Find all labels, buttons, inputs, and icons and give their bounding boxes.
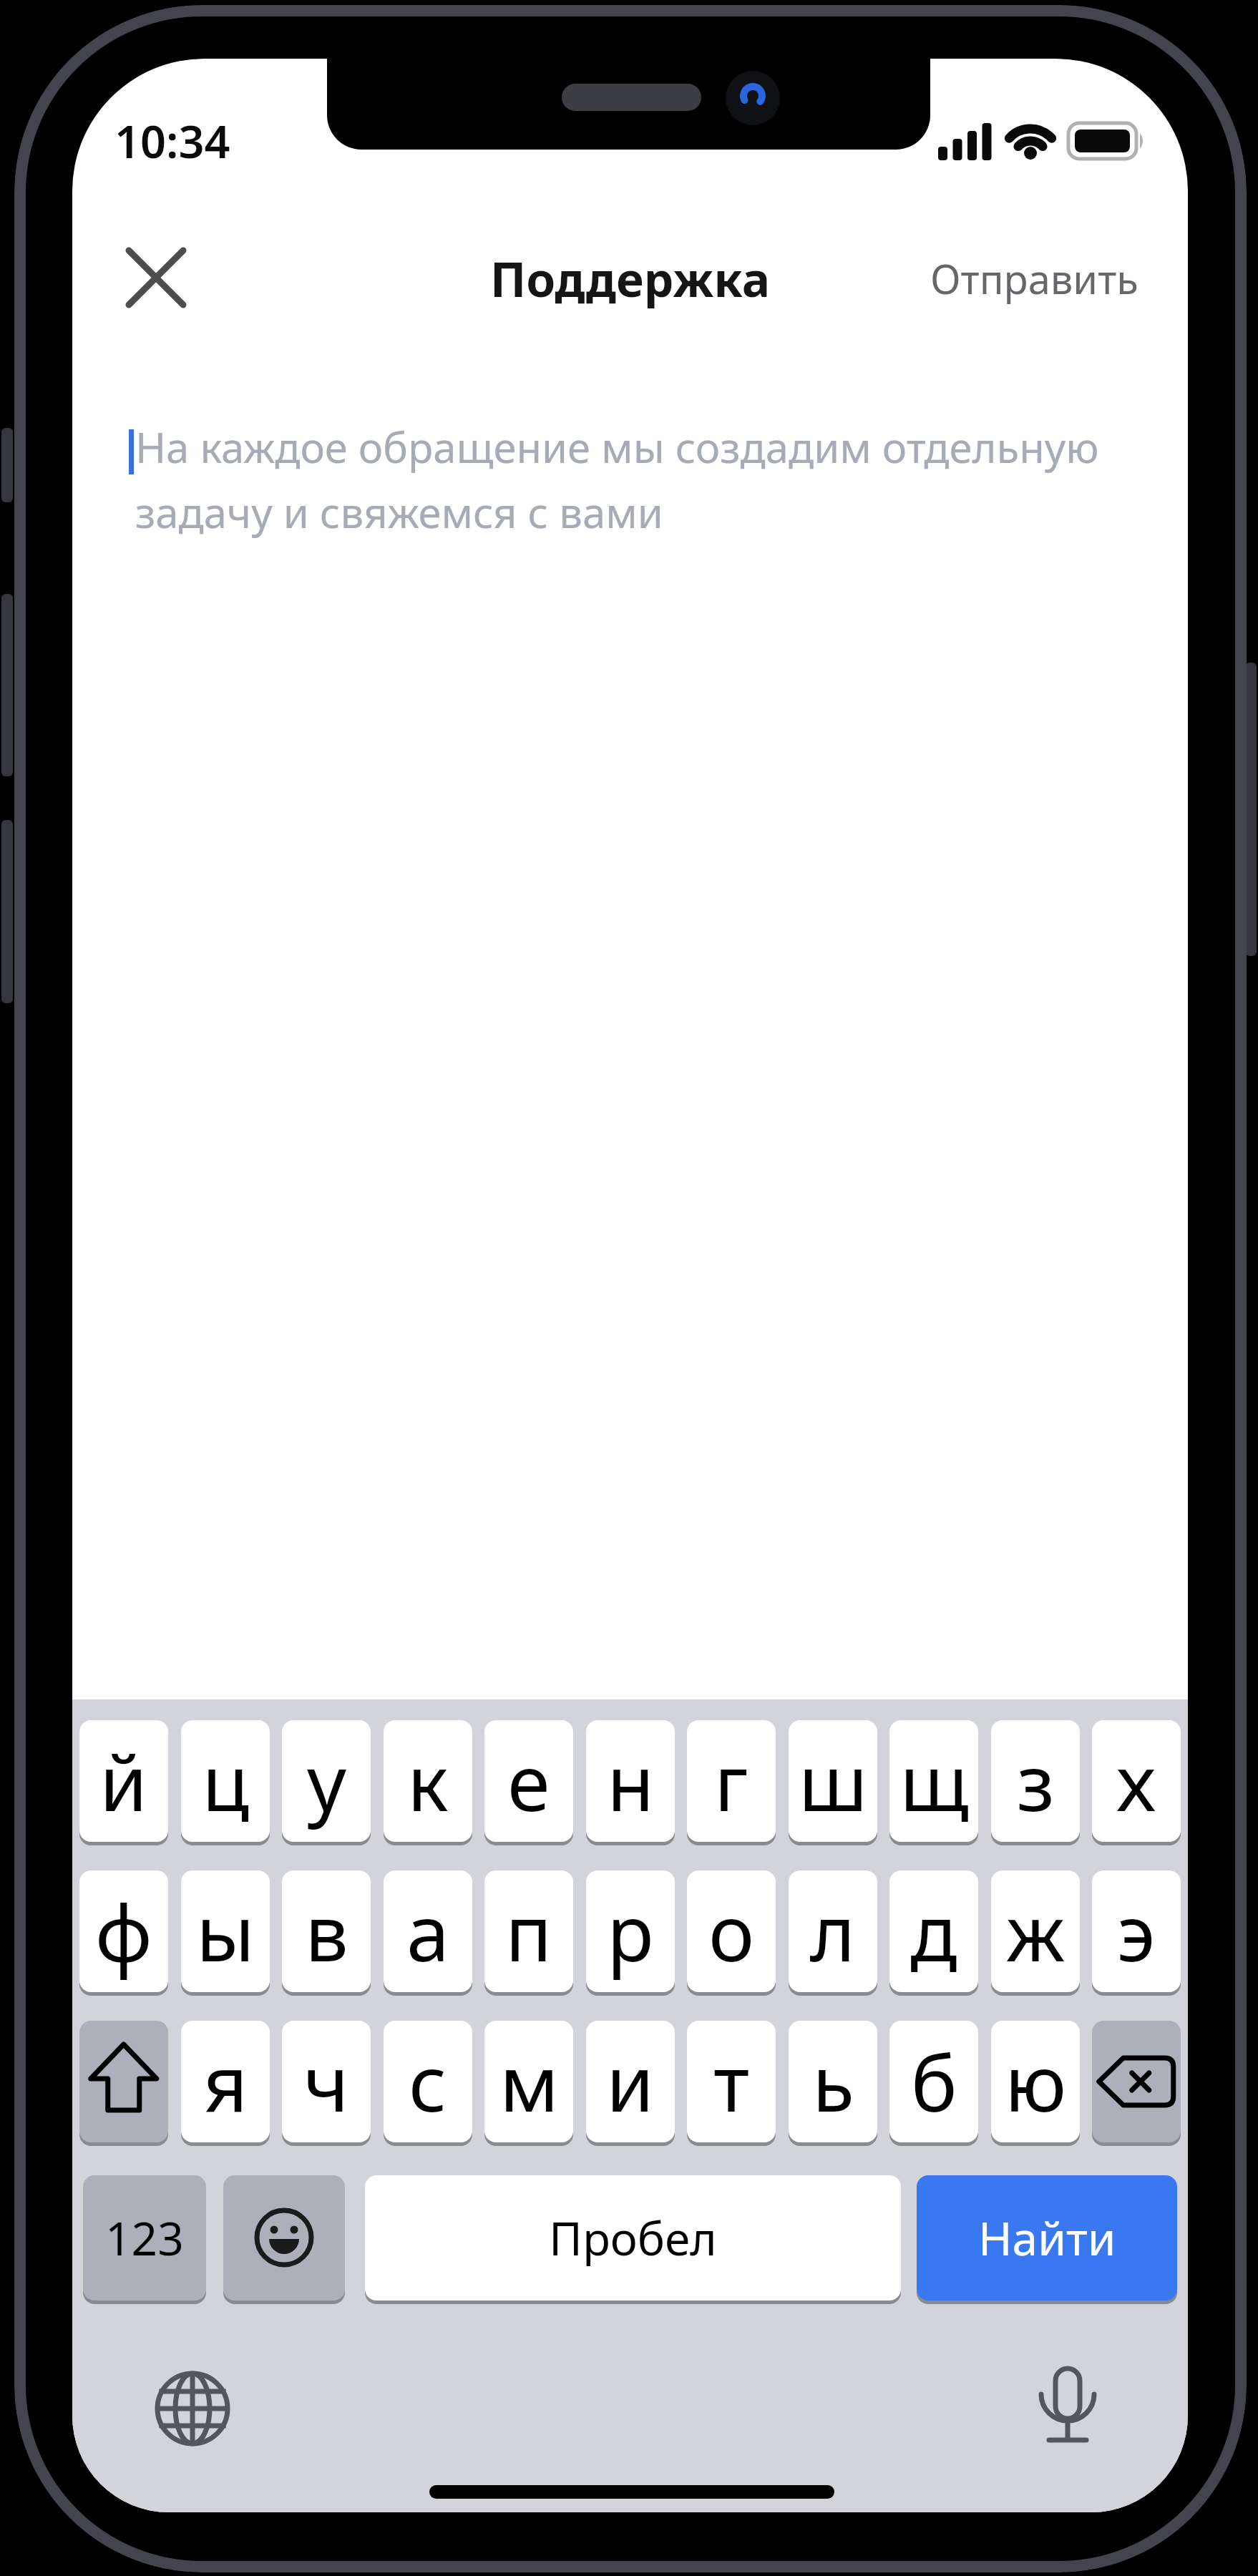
staticText: ю bbox=[1005, 2029, 1067, 2135]
staticText: т bbox=[713, 2029, 750, 2135]
button[interactable]: о bbox=[687, 1870, 776, 1992]
staticText: 10:34 bbox=[114, 110, 230, 170]
button[interactable]: д bbox=[889, 1870, 978, 1992]
button[interactable]: ы bbox=[181, 1870, 270, 1992]
staticText: ш bbox=[799, 1729, 868, 1834]
button[interactable]: у bbox=[282, 1720, 371, 1842]
staticText: э bbox=[1117, 1879, 1156, 1984]
staticText: я bbox=[203, 2029, 248, 2135]
button[interactable]: р bbox=[586, 1870, 675, 1992]
button[interactable]: ч bbox=[282, 2021, 371, 2142]
staticText: и bbox=[606, 2029, 655, 2135]
button[interactable]: е bbox=[484, 1720, 573, 1842]
staticText: х bbox=[1116, 1729, 1156, 1834]
button[interactable]: ш bbox=[789, 1720, 877, 1842]
button[interactable]: и bbox=[586, 2021, 675, 2142]
button[interactable]: На каждое обращение мы создадим отдельну… bbox=[135, 419, 1180, 626]
button[interactable]: й bbox=[79, 1720, 168, 1842]
staticText: ы bbox=[196, 1879, 255, 1984]
staticText: м bbox=[499, 2029, 559, 2135]
staticText: ж bbox=[1006, 1879, 1065, 1984]
button[interactable]: ь bbox=[789, 2021, 877, 2142]
button[interactable]: э bbox=[1092, 1870, 1181, 1992]
staticText: б bbox=[911, 2029, 957, 2135]
staticText: о bbox=[708, 1879, 755, 1984]
staticText: Отправить bbox=[930, 251, 1138, 306]
button[interactable] bbox=[1092, 2021, 1181, 2142]
staticText: а bbox=[406, 1879, 450, 1984]
button[interactable]: б bbox=[889, 2021, 978, 2142]
button[interactable]: я bbox=[181, 2021, 270, 2142]
staticText: в bbox=[305, 1879, 348, 1984]
button[interactable]: Пробел bbox=[365, 2175, 901, 2301]
button[interactable]: т bbox=[687, 2021, 776, 2142]
staticText: ч bbox=[303, 2029, 349, 2135]
button[interactable] bbox=[150, 2366, 235, 2451]
button[interactable]: ц bbox=[181, 1720, 270, 1842]
staticText: р bbox=[607, 1879, 654, 1984]
button[interactable]: м bbox=[484, 2021, 573, 2142]
staticText: ь bbox=[812, 2029, 854, 2135]
staticText: ф bbox=[95, 1879, 152, 1984]
staticText: к bbox=[407, 1729, 449, 1834]
button[interactable] bbox=[79, 2021, 168, 2142]
staticText: Найти bbox=[978, 2207, 1116, 2269]
button[interactable]: п bbox=[484, 1870, 573, 1992]
staticText: Пробел bbox=[549, 2207, 717, 2269]
button[interactable] bbox=[122, 243, 191, 312]
staticText: г bbox=[714, 1729, 749, 1834]
staticText: н bbox=[607, 1729, 655, 1834]
button[interactable]: ж bbox=[991, 1870, 1080, 1992]
button[interactable]: ф bbox=[79, 1870, 168, 1992]
staticText: д bbox=[910, 1879, 957, 1984]
staticText: л bbox=[810, 1879, 856, 1984]
staticText: щ bbox=[899, 1729, 969, 1834]
button[interactable]: 123 bbox=[83, 2175, 206, 2301]
staticText: е bbox=[507, 1729, 550, 1834]
button[interactable]: х bbox=[1092, 1720, 1181, 1842]
staticText: п bbox=[505, 1879, 552, 1984]
button[interactable]: з bbox=[991, 1720, 1080, 1842]
button[interactable]: Отправить bbox=[902, 248, 1138, 309]
staticText: с bbox=[409, 2029, 447, 2135]
button[interactable] bbox=[1025, 2363, 1111, 2449]
staticText: 123 bbox=[105, 2207, 184, 2269]
button[interactable]: Найти bbox=[917, 2175, 1177, 2301]
staticText: у bbox=[307, 1729, 346, 1834]
button[interactable]: г bbox=[687, 1720, 776, 1842]
staticText: Поддержка bbox=[490, 246, 770, 311]
button[interactable] bbox=[223, 2175, 345, 2301]
staticText: з bbox=[1017, 1729, 1055, 1834]
button[interactable]: н bbox=[586, 1720, 675, 1842]
button[interactable]: а bbox=[384, 1870, 472, 1992]
button[interactable]: с bbox=[384, 2021, 472, 2142]
staticText: й bbox=[99, 1729, 148, 1834]
button[interactable]: щ bbox=[889, 1720, 978, 1842]
button[interactable]: ю bbox=[991, 2021, 1080, 2142]
button[interactable]: в bbox=[282, 1870, 371, 1992]
button[interactable]: к bbox=[384, 1720, 472, 1842]
staticText: ц bbox=[202, 1729, 250, 1834]
button[interactable]: л bbox=[789, 1870, 877, 1992]
staticText: На каждое обращение мы создадим отдельну… bbox=[135, 419, 1099, 540]
